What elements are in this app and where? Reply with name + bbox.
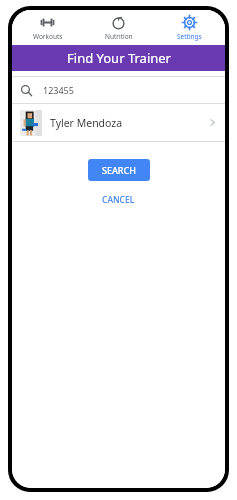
staticText: 123455 — [43, 84, 74, 96]
button[interactable]: SEARCH — [88, 159, 150, 181]
staticText: CANCEL — [102, 194, 135, 206]
staticText: Tyler Mendoza — [50, 116, 123, 130]
button[interactable]: Settings — [154, 10, 225, 45]
button[interactable]: Workouts — [12, 10, 83, 45]
staticText: Settings — [177, 32, 202, 41]
staticText: Find Your Trainer — [67, 49, 171, 67]
button[interactable]: Nutrition — [83, 10, 154, 45]
button[interactable]: Search — [12, 77, 225, 103]
staticText: Nutrition — [105, 32, 133, 41]
button[interactable]: CANCEL — [90, 190, 147, 210]
other: Search — [20, 84, 33, 97]
staticText: Workouts — [33, 32, 63, 41]
staticText: SEARCH — [102, 164, 136, 176]
button[interactable]: Tyler Mendoza — [12, 104, 225, 141]
